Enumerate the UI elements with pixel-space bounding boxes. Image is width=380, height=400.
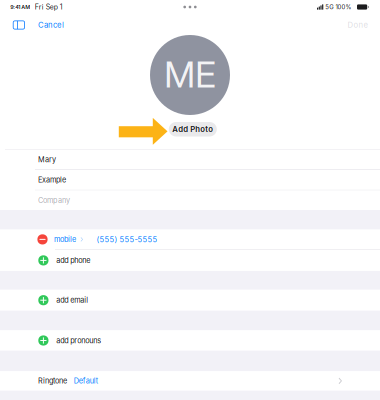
staticText: 100%	[335, 3, 351, 11]
staticText: Example	[38, 175, 66, 184]
button[interactable]: Ringtone	[0, 371, 380, 391]
staticText: Fri Sep 1	[35, 3, 63, 11]
staticText: Add Photo	[172, 125, 213, 134]
button[interactable]: Add Photo	[169, 122, 217, 136]
staticText: 5G	[325, 3, 333, 11]
staticText: Ringtone	[38, 376, 67, 385]
button[interactable]: mobile	[0, 230, 380, 249]
button[interactable]: Done	[290, 14, 380, 36]
staticText: 9:41 AM	[10, 4, 30, 10]
staticText: Mary	[38, 155, 56, 164]
staticText: Cancel	[38, 20, 64, 30]
button[interactable]: Mary	[0, 150, 380, 169]
button[interactable]: Example	[0, 170, 380, 190]
staticText: ME	[164, 53, 216, 96]
button[interactable]: add phone	[0, 250, 380, 271]
button[interactable]: add pronouns	[0, 330, 380, 351]
staticText: Done	[347, 20, 368, 30]
staticText: mobile	[54, 235, 76, 244]
button[interactable]: Cancel	[0, 14, 130, 36]
staticText: add email	[56, 296, 88, 305]
staticText: (555) 555-5555	[97, 235, 158, 244]
staticText: Company	[38, 196, 70, 205]
button[interactable]: Company	[0, 190, 380, 210]
staticText: Default	[74, 376, 98, 385]
staticText: add phone	[56, 256, 90, 265]
button[interactable]: add email	[0, 290, 380, 311]
staticText: add pronouns	[56, 336, 101, 345]
